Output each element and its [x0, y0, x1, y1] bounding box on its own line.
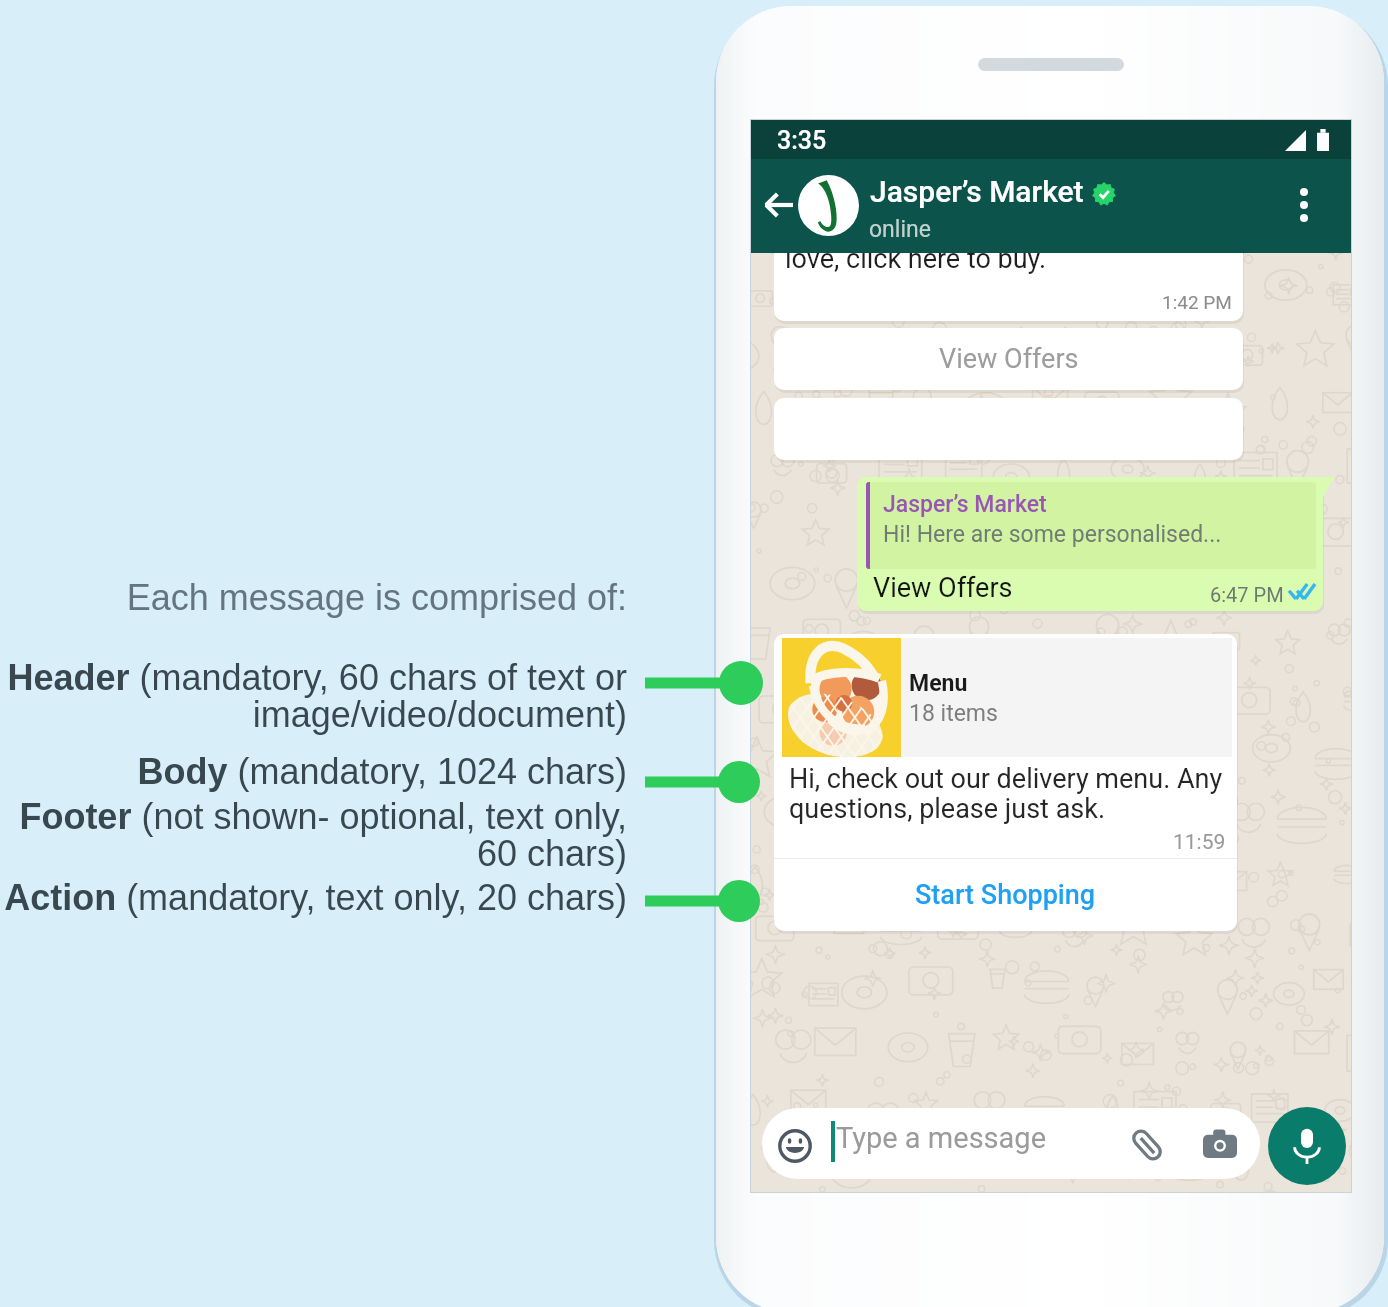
button[interactable]: Menu, 18 items: [782, 638, 1232, 757]
staticText: 18 items: [909, 700, 998, 727]
staticText: Header (mandatory, 60 chars of text or i…: [0, 657, 627, 735]
staticText: 1:42 PM: [1162, 291, 1232, 313]
staticText: Type a message: [836, 1121, 1047, 1155]
staticText: Start Shopping: [915, 879, 1096, 911]
button[interactable]: Attach: [1129, 1127, 1165, 1163]
staticText: Each message is comprised of:: [0, 577, 627, 617]
button[interactable]: Voice message: [1268, 1107, 1346, 1185]
staticText: Action (mandatory, text only, 20 chars): [0, 877, 627, 917]
button[interactable]: [762, 1108, 1260, 1179]
staticText: 6:47 PM: [1210, 583, 1284, 606]
staticText: Hi! Here are some personalised...: [883, 521, 1222, 548]
button[interactable]: Start Shopping: [774, 859, 1237, 931]
staticText: Menu: [909, 670, 968, 697]
staticText: Footer (not shown- optional, text only, …: [0, 796, 627, 874]
staticText: online: [869, 216, 931, 243]
staticText: Jasper’s Market: [883, 491, 1047, 518]
button[interactable]: Emoji: [778, 1129, 812, 1163]
staticText: View Offers: [873, 572, 1013, 604]
button[interactable]: Back: [751, 176, 807, 234]
staticText: 3:35: [777, 126, 827, 155]
staticText: Body (mandatory, 1024 chars): [0, 751, 627, 791]
staticText: View Offers: [939, 343, 1079, 375]
button[interactable]: More options: [1275, 176, 1333, 234]
button[interactable]: View Offers: [774, 328, 1243, 390]
staticText: Hi, check out our delivery menu. Any que…: [789, 763, 1229, 824]
button[interactable]: Jasper’s Market: [857, 477, 1323, 611]
staticText: love, click here to buy.: [785, 243, 1047, 275]
button[interactable]: Camera: [1203, 1129, 1237, 1158]
button[interactable]: love, click here to buy.: [774, 231, 1243, 321]
staticText: 11:59: [1173, 830, 1226, 855]
staticText: Jasper’s Market: [870, 174, 1084, 209]
